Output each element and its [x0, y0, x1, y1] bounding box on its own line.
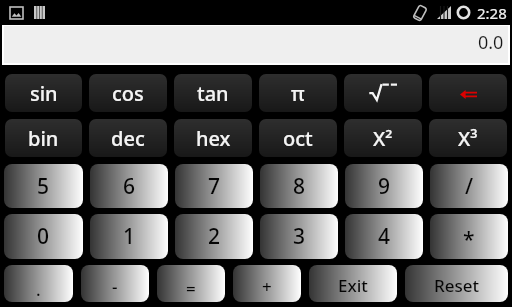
button[interactable]: 0.0	[4, 26, 508, 63]
button[interactable]: -	[81, 265, 149, 302]
staticText: 4	[378, 222, 391, 251]
button[interactable]: =	[157, 265, 225, 302]
staticText: *	[463, 225, 475, 254]
button[interactable]: π	[259, 74, 337, 112]
button[interactable]: Backspace	[429, 74, 507, 112]
button[interactable]: .	[4, 265, 73, 302]
button[interactable]: hex	[174, 119, 252, 157]
button[interactable]: Reset	[405, 265, 508, 302]
staticText: .	[36, 278, 41, 301]
staticText: X³	[458, 125, 478, 152]
staticText: 1	[123, 222, 136, 251]
button[interactable]: X³	[429, 119, 507, 157]
staticText: sin	[30, 80, 58, 107]
staticText: X²	[373, 125, 393, 152]
button[interactable]: Square root	[344, 74, 422, 112]
staticText: 9	[378, 172, 391, 201]
button[interactable]: 1	[90, 214, 168, 259]
staticText: bin	[28, 125, 59, 152]
staticText: 3	[293, 222, 306, 251]
staticText: 6	[123, 172, 136, 201]
staticText: /	[465, 172, 474, 201]
button[interactable]: 3	[260, 214, 338, 259]
staticText: hex	[196, 125, 231, 152]
button[interactable]: 2	[175, 214, 253, 259]
button[interactable]: 7	[175, 164, 253, 208]
button[interactable]: 0	[4, 214, 83, 259]
button[interactable]: +	[233, 265, 301, 302]
button[interactable]: 9	[345, 164, 423, 208]
button[interactable]: 6	[90, 164, 168, 208]
staticText: π	[291, 80, 305, 107]
staticText: 7	[208, 172, 221, 201]
staticText: 0	[37, 222, 50, 251]
staticText: 2	[208, 222, 221, 251]
button[interactable]: /	[430, 164, 508, 208]
button[interactable]: *	[430, 214, 508, 259]
staticText: 5	[37, 172, 50, 201]
staticText: -	[112, 275, 118, 298]
staticText: 2:28	[477, 3, 507, 23]
button[interactable]: tan	[174, 74, 252, 112]
button[interactable]: dec	[89, 119, 167, 157]
button[interactable]: bin	[5, 119, 82, 157]
staticText: tan	[197, 80, 229, 107]
button[interactable]: 8	[260, 164, 338, 208]
button[interactable]: cos	[89, 74, 167, 112]
button[interactable]: X²	[344, 119, 422, 157]
button[interactable]: 4	[345, 214, 423, 259]
button[interactable]: oct	[259, 119, 337, 157]
staticText: oct	[283, 125, 313, 152]
staticText: Reset	[434, 274, 480, 297]
button[interactable]: 5	[4, 164, 83, 208]
staticText: cos	[112, 80, 144, 107]
staticText: =	[186, 277, 196, 300]
staticText: 0.0	[478, 30, 504, 55]
staticText: +	[262, 275, 272, 298]
button[interactable]: Exit	[309, 265, 397, 302]
staticText: Exit	[338, 274, 368, 297]
staticText: 8	[293, 172, 306, 201]
button[interactable]: sin	[5, 74, 82, 112]
staticText: dec	[111, 125, 145, 152]
